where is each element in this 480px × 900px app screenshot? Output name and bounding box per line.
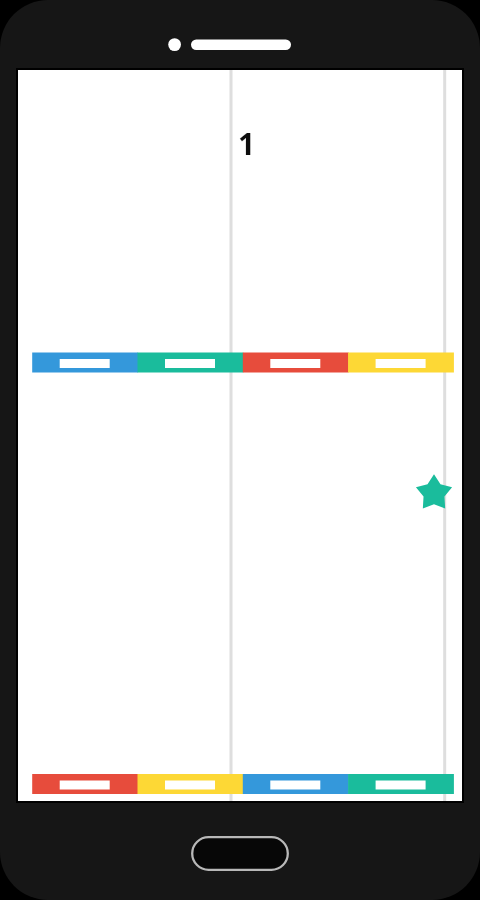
staticText: 1 bbox=[238, 123, 256, 164]
button[interactable]: Home bbox=[191, 836, 289, 871]
button[interactable]: Tap to switch lane bbox=[18, 70, 462, 801]
